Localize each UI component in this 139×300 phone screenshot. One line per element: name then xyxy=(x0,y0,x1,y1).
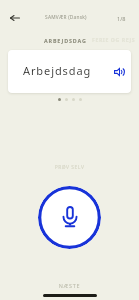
staticText: SAMVÆR (Dansk) xyxy=(45,14,87,21)
staticText: ARBEJDSDAG xyxy=(44,37,87,44)
staticText: Arbejdsdag xyxy=(23,63,92,78)
button[interactable]: 1/8 xyxy=(111,8,132,29)
button[interactable]: Back xyxy=(4,7,25,28)
staticText: FERIE OG REJS xyxy=(92,37,136,44)
button[interactable]: Play audio xyxy=(111,64,127,80)
staticText: PRØV SELV xyxy=(0,164,139,171)
button[interactable]: Record your voice xyxy=(38,186,101,249)
button[interactable]: NÆSTE xyxy=(0,282,139,289)
button[interactable]: Arbejdsdag xyxy=(8,50,131,93)
staticText: 1/8 xyxy=(117,15,126,23)
